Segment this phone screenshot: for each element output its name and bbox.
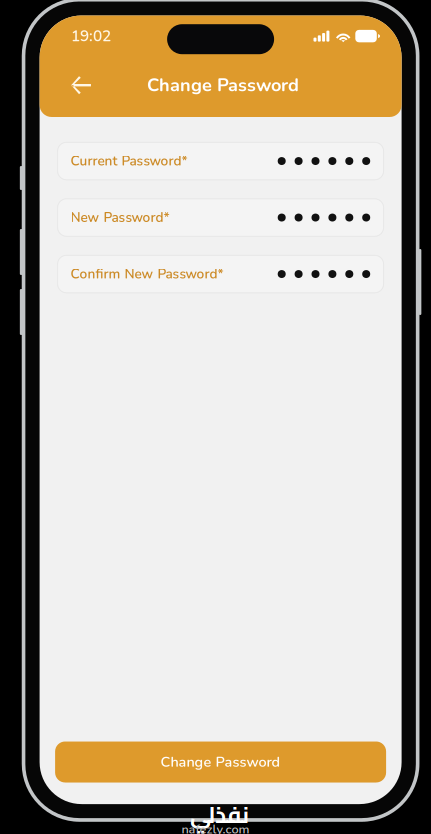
button[interactable]: New Password*: [58, 199, 384, 236]
staticText: نفذلي: [189, 793, 248, 834]
staticText: nafezly.com: [181, 821, 249, 834]
staticText: Change Password: [161, 752, 281, 772]
staticText: Confirm New Password*: [71, 265, 224, 283]
staticText: 19:02: [71, 26, 111, 46]
button[interactable]: Back: [62, 66, 100, 104]
staticText: New Password*: [71, 208, 170, 227]
button[interactable]: Current Password*: [58, 142, 384, 180]
button[interactable]: Confirm New Password*: [58, 255, 384, 293]
staticText: Current Password*: [71, 152, 188, 170]
staticText: Change Password: [147, 73, 299, 97]
button[interactable]: Change Password: [55, 741, 386, 782]
